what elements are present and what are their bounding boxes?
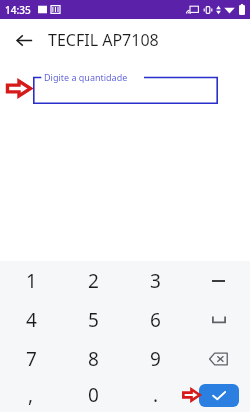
button[interactable]: Space <box>187 300 250 339</box>
button[interactable]: 8 <box>62 339 124 378</box>
button[interactable]: Back <box>10 26 38 54</box>
staticText: 9 <box>150 346 161 372</box>
staticText: 6 <box>150 307 161 333</box>
button[interactable]: 6 <box>124 300 187 339</box>
button[interactable]: Minus <box>187 261 250 300</box>
button[interactable]: 7 <box>0 339 62 378</box>
button[interactable]: . <box>124 378 187 412</box>
button[interactable]: 3 <box>124 261 187 300</box>
staticText: 0 <box>88 382 99 408</box>
staticText: 4 <box>26 307 37 333</box>
button[interactable]: 9 <box>124 339 187 378</box>
button[interactable]: 1 <box>0 261 62 300</box>
staticText: 1 <box>26 268 37 294</box>
staticText: 14:35 <box>5 3 31 17</box>
staticText: 7 <box>26 346 37 372</box>
staticText: , <box>28 382 34 408</box>
button[interactable]: , <box>0 378 62 412</box>
button[interactable]: Enter <box>187 378 250 412</box>
staticText: 3 <box>150 268 161 294</box>
staticText: TECFIL AP7108 <box>48 29 159 51</box>
button[interactable]: Digite a quantidade <box>33 70 218 104</box>
button[interactable]: 5 <box>62 300 124 339</box>
staticText: 8 <box>88 346 99 372</box>
staticText: Digite a quantidade <box>44 71 128 83</box>
staticText: 5 <box>88 307 99 333</box>
staticText: 2 <box>88 268 99 294</box>
staticText: . <box>153 382 159 408</box>
button[interactable]: 4 <box>0 300 62 339</box>
button[interactable]: 0 <box>62 378 124 412</box>
button[interactable]: Backspace <box>187 339 250 378</box>
button[interactable]: 2 <box>62 261 124 300</box>
